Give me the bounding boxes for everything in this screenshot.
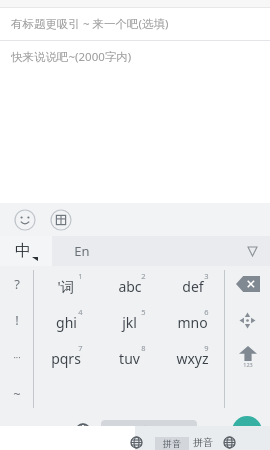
staticText: 6 bbox=[204, 307, 209, 317]
staticText: '词 bbox=[57, 277, 75, 296]
button[interactable]: . bbox=[200, 412, 224, 450]
staticText: mno bbox=[177, 313, 208, 332]
staticText: ··· bbox=[13, 351, 21, 363]
staticText: 拼音 bbox=[163, 438, 181, 449]
button[interactable]: Switch language bbox=[68, 412, 98, 450]
button[interactable]: 快来说说吧~(2000字内) bbox=[0, 42, 270, 72]
staticText: 5 bbox=[141, 307, 146, 317]
button[interactable]: mno bbox=[161, 302, 224, 338]
button[interactable]: ? bbox=[0, 266, 33, 302]
staticText: ~ bbox=[13, 385, 21, 403]
button[interactable]: , bbox=[40, 412, 68, 450]
staticText: ?1 bbox=[10, 424, 22, 439]
staticText: 7 bbox=[78, 343, 83, 353]
button[interactable]: tuv bbox=[98, 338, 161, 375]
staticText: 123 bbox=[243, 361, 253, 368]
button[interactable]: ··· bbox=[0, 338, 33, 375]
button[interactable]: 有标题更吸引 ~ 来一个吧(选填) bbox=[0, 8, 270, 40]
staticText: 有标题更吸引 ~ 来一个吧(选填) bbox=[11, 16, 169, 32]
button[interactable]: Symbols and numbers bbox=[225, 338, 270, 375]
button[interactable]: Keyboard layouts bbox=[50, 209, 72, 231]
staticText: 1 bbox=[78, 271, 83, 281]
staticText: 拼音 bbox=[193, 436, 213, 449]
staticText: def bbox=[182, 277, 204, 296]
button[interactable]: ! bbox=[0, 302, 33, 338]
staticText: abc bbox=[118, 277, 142, 296]
staticText: 快来说说吧~(2000字内) bbox=[11, 49, 132, 65]
staticText: 9 bbox=[204, 343, 209, 353]
staticText: 拼音 bbox=[129, 424, 151, 438]
staticText: 8 bbox=[141, 343, 146, 353]
staticText: En bbox=[74, 242, 90, 260]
button[interactable]: Emoji bbox=[14, 209, 36, 231]
button[interactable]: ghi bbox=[34, 302, 98, 338]
button[interactable]: Cursor move bbox=[225, 302, 270, 338]
staticText: 中 bbox=[15, 241, 31, 261]
button[interactable]: jkl bbox=[98, 302, 161, 338]
button[interactable]: Expand candidates bbox=[246, 245, 258, 257]
staticText: 0 bbox=[179, 425, 185, 437]
button[interactable]: wxyz bbox=[161, 338, 224, 375]
staticText: ! bbox=[15, 311, 19, 329]
button[interactable]: 中 bbox=[0, 236, 52, 266]
staticText: ? bbox=[14, 275, 20, 293]
staticText: jkl bbox=[122, 313, 137, 332]
button[interactable]: 拼音 bbox=[101, 420, 197, 442]
button[interactable]: def bbox=[161, 266, 224, 302]
button[interactable]: '词 bbox=[34, 266, 98, 302]
button[interactable]: pqrs bbox=[34, 338, 98, 375]
button[interactable]: ~ bbox=[0, 375, 33, 412]
button[interactable]: abc bbox=[98, 266, 161, 302]
button[interactable]: ?1 bbox=[0, 412, 40, 450]
staticText: 3 bbox=[204, 271, 209, 281]
staticText: ghi bbox=[56, 313, 77, 332]
staticText: pqrs bbox=[51, 349, 81, 368]
staticText: , bbox=[52, 422, 56, 440]
staticText: 2 bbox=[141, 271, 146, 281]
button[interactable]: Enter bbox=[232, 416, 262, 446]
staticText: wxyz bbox=[176, 349, 209, 368]
button[interactable]: Backspace bbox=[225, 266, 270, 302]
staticText: tuv bbox=[119, 349, 140, 368]
staticText: . bbox=[210, 422, 214, 440]
staticText: 4 bbox=[78, 307, 83, 317]
button[interactable]: En bbox=[52, 236, 270, 266]
